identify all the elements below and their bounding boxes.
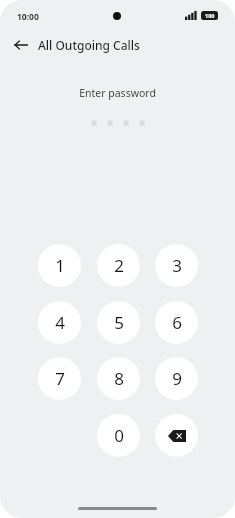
staticText: 7 xyxy=(55,367,65,390)
staticText: 4 xyxy=(55,311,65,334)
button[interactable]: Back xyxy=(10,34,32,56)
staticText: 8 xyxy=(114,367,124,390)
staticText: Enter password xyxy=(79,86,156,100)
button[interactable]: 2 xyxy=(97,244,140,287)
staticText: 100 xyxy=(205,12,215,19)
staticText: 5 xyxy=(114,311,124,334)
staticText: 2 xyxy=(114,254,124,277)
staticText: 3 xyxy=(172,254,182,277)
staticText: 6 xyxy=(172,311,182,334)
staticText: 1 xyxy=(55,254,65,277)
button[interactable]: 0 xyxy=(97,414,140,457)
button[interactable]: 9 xyxy=(155,357,198,400)
button[interactable]: 7 xyxy=(38,357,81,400)
button[interactable]: 3 xyxy=(155,244,198,287)
button[interactable]: 1 xyxy=(38,244,81,287)
staticText: All Outgoing Calls xyxy=(38,37,140,53)
staticText: 10:00 xyxy=(17,11,39,23)
button[interactable]: 4 xyxy=(38,301,81,344)
button[interactable]: 6 xyxy=(155,301,198,344)
staticText: 9 xyxy=(172,367,182,390)
button[interactable]: 5 xyxy=(97,301,140,344)
button[interactable]: 8 xyxy=(97,357,140,400)
staticText: 0 xyxy=(114,424,124,447)
button[interactable]: Backspace xyxy=(155,414,198,457)
